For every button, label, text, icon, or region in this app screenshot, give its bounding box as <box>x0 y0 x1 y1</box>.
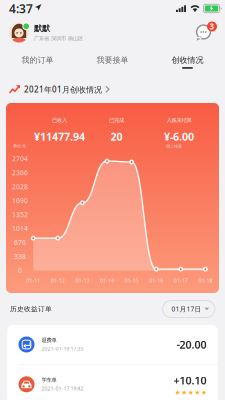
staticText: 2021-01-19 17:35 <box>41 345 83 352</box>
button[interactable]: 我的订单 <box>0 50 75 74</box>
staticText: 676 <box>14 238 26 247</box>
button[interactable]: 01月17日 <box>163 301 215 317</box>
staticText: 入账未结算 <box>166 117 191 124</box>
staticText: 01-17 <box>174 277 188 284</box>
staticText: -20.00 <box>176 337 206 352</box>
staticText: 创收情况 <box>171 55 203 65</box>
staticText: 01-11 <box>26 277 40 284</box>
staticText: 历史收益订单 <box>10 305 52 313</box>
staticText: ¥11477.94 <box>34 130 85 144</box>
staticText: 默默 <box>34 23 50 33</box>
staticText: 338 <box>14 252 26 261</box>
staticText: 已收入 <box>52 117 67 124</box>
staticText: 01-12 <box>51 277 65 284</box>
staticText: 已完成 <box>109 117 124 124</box>
staticText: 学车单 <box>41 377 56 383</box>
staticText: 4:37 <box>9 0 33 16</box>
staticText: +10.10 <box>173 373 206 388</box>
staticText: 单位:元 <box>13 143 26 148</box>
button[interactable]: 创收情况 <box>150 50 225 74</box>
staticText: 2704 <box>12 154 28 163</box>
button[interactable]: 学车单 <box>7 365 217 400</box>
staticText: ¥-6.00 <box>164 130 194 144</box>
staticText: 01月17日 <box>172 305 202 313</box>
button[interactable]: 退费单 <box>7 325 217 364</box>
staticText: 周二结算 <box>166 144 182 149</box>
staticText: 2028 <box>12 182 28 191</box>
staticText: 1014 <box>12 224 28 233</box>
staticText: 1352 <box>12 210 28 219</box>
staticText: 01-15 <box>125 277 139 284</box>
button[interactable]: 我要接单 <box>75 50 150 74</box>
staticText: 3 <box>209 21 214 32</box>
button[interactable]: 消息 <box>192 19 216 45</box>
staticText: 2021-01-17 19:42 <box>41 385 83 392</box>
staticText: 我的订单 <box>21 55 53 65</box>
staticText: 退费单 <box>41 337 56 343</box>
staticText: 2021年01月创收情况 <box>24 84 102 95</box>
staticText: 0 <box>18 266 22 275</box>
staticText: 我要接单 <box>96 55 128 65</box>
staticText: 广东省 深圳市 南山区 <box>34 35 83 42</box>
staticText: 01-18 <box>198 277 212 284</box>
staticText: 20 <box>110 130 122 144</box>
staticText: 01-13 <box>75 277 89 284</box>
staticText: 01-14 <box>100 277 114 284</box>
staticText: 1690 <box>12 196 28 205</box>
staticText: 2366 <box>12 168 28 177</box>
staticText: 01-16 <box>149 277 163 284</box>
